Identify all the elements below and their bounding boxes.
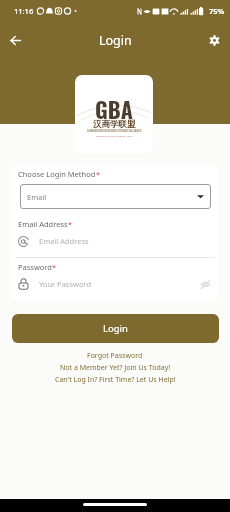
staticText: Can't Log In? First Time? Let Us Help! xyxy=(55,375,176,385)
staticText: Login xyxy=(99,32,132,49)
button[interactable]: Email xyxy=(20,184,211,209)
button[interactable]: Forgot Password xyxy=(83,349,147,363)
staticText: * xyxy=(96,169,101,179)
staticText: * xyxy=(52,262,57,272)
staticText: Forgot Password xyxy=(87,351,143,361)
staticText: Email Address xyxy=(18,219,68,229)
staticText: Login xyxy=(103,322,128,335)
staticText: 75% xyxy=(209,6,225,16)
staticText: GUANGDONG BUSINESS STUDENT ALLIANCE xyxy=(87,129,142,132)
staticText: * xyxy=(68,219,73,229)
staticText: Powered by GBA Student Union xyxy=(96,134,133,137)
staticText: Email xyxy=(27,192,47,202)
button[interactable]: Login xyxy=(12,314,219,343)
staticText: Choose Login Method xyxy=(18,169,96,179)
button[interactable]: Not a Member Yet? Join Us Today! xyxy=(56,361,175,375)
button[interactable]: Settings xyxy=(202,28,226,52)
staticText: 11:16 xyxy=(14,6,34,16)
button[interactable]: Can't Log In? First Time? Let Us Help! xyxy=(51,373,180,387)
staticText: Password xyxy=(18,262,52,272)
button[interactable]: Back xyxy=(3,28,27,52)
button[interactable]: Email Address xyxy=(18,234,212,248)
staticText: Not a Member Yet? Join Us Today! xyxy=(60,363,171,373)
button[interactable]: Your Password xyxy=(18,276,212,292)
staticText: Your Password xyxy=(39,279,92,289)
staticText: Email Address xyxy=(39,236,89,246)
button[interactable]: Show password xyxy=(198,277,212,291)
staticText: GBA xyxy=(95,93,133,126)
staticText: 汉商学联盟 xyxy=(93,119,136,130)
